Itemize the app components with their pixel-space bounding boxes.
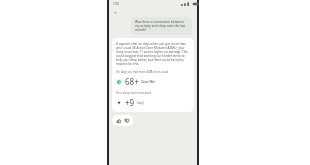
other: Assistant bbox=[114, 11, 118, 15]
staticText: Was there a connection between my activi… bbox=[135, 20, 188, 32]
staticText: (avg) bbox=[137, 101, 144, 105]
staticText: It appears that on days when you got mor… bbox=[116, 42, 190, 66]
staticText: Zone Min bbox=[141, 80, 156, 84]
staticText: On days you had more AZMs than usual bbox=[116, 70, 169, 74]
button[interactable]: Was there a connection between my activi… bbox=[131, 17, 192, 35]
staticText: Your sleep score increased bbox=[116, 91, 151, 95]
staticText: +9 bbox=[125, 97, 135, 108]
staticText: 7:30 bbox=[113, 2, 119, 6]
staticText: 68+ bbox=[125, 76, 139, 87]
button[interactable]: It appears that on days when you got mor… bbox=[112, 38, 194, 112]
button[interactable]: Thumbs down bbox=[124, 118, 129, 123]
button[interactable]: Thumbs up bbox=[116, 118, 121, 123]
